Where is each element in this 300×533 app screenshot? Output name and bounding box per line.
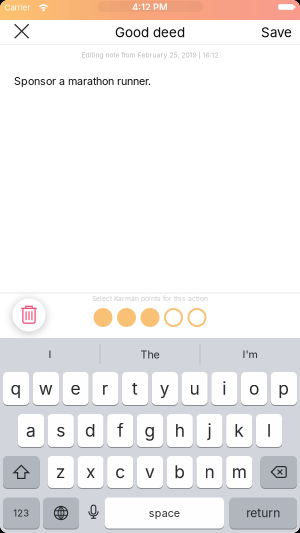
button[interactable]: a — [18, 413, 44, 447]
button[interactable] — [260, 455, 297, 488]
button[interactable]: b — [167, 455, 193, 488]
staticText: n — [204, 462, 214, 482]
staticText: l — [267, 420, 271, 441]
button[interactable] — [12, 298, 45, 331]
button[interactable]: m — [226, 455, 252, 488]
button[interactable]: s — [48, 413, 74, 447]
staticText: y — [160, 378, 170, 399]
button[interactable] — [187, 308, 206, 327]
staticText: 4:12 PM — [132, 1, 168, 12]
button[interactable]: space — [104, 497, 224, 529]
button[interactable]: y — [152, 371, 178, 405]
staticText: space — [149, 507, 180, 519]
button[interactable]: e — [62, 371, 89, 405]
button[interactable]: h — [167, 413, 193, 447]
button[interactable]: r — [92, 371, 118, 405]
staticText: t — [132, 378, 138, 399]
staticText: p — [278, 378, 289, 399]
button[interactable]: v — [137, 455, 163, 488]
button[interactable]: p — [271, 371, 297, 405]
staticText: s — [56, 420, 65, 441]
button[interactable]: f — [107, 413, 133, 447]
button[interactable] — [140, 308, 159, 327]
button[interactable]: x — [77, 455, 104, 488]
button[interactable]: k — [226, 413, 252, 447]
staticText: x — [86, 462, 95, 482]
button[interactable] — [43, 497, 79, 529]
button[interactable] — [3, 455, 39, 488]
button[interactable]: u — [181, 371, 208, 405]
staticText: a — [26, 420, 36, 441]
staticText: Save — [261, 25, 292, 40]
button[interactable] — [164, 308, 183, 327]
staticText: Sponsor a marathon runner. — [14, 75, 151, 87]
button[interactable]: c — [107, 455, 133, 488]
staticText: b — [174, 462, 185, 482]
button[interactable] — [117, 308, 136, 327]
staticText: d — [85, 420, 96, 441]
button[interactable]: l — [256, 413, 282, 447]
staticText: The — [140, 348, 159, 361]
staticText: r — [102, 378, 109, 399]
staticText: m — [232, 462, 247, 482]
staticText: 123 — [13, 507, 29, 518]
button[interactable]: i — [211, 371, 237, 405]
button[interactable] — [8, 17, 36, 45]
staticText: o — [249, 378, 259, 399]
button[interactable]: w — [33, 371, 59, 405]
staticText: k — [234, 420, 244, 441]
button[interactable]: g — [137, 413, 163, 447]
staticText: return — [246, 506, 280, 520]
button[interactable]: The — [102, 341, 198, 367]
button[interactable]: d — [77, 413, 104, 447]
button[interactable] — [83, 501, 103, 525]
button[interactable]: Save — [261, 25, 292, 40]
button[interactable]: 123 — [3, 497, 39, 529]
staticText: w — [39, 378, 53, 399]
staticText: v — [145, 462, 155, 482]
button[interactable]: I — [2, 341, 98, 367]
staticText: z — [56, 462, 66, 482]
staticText: u — [190, 378, 200, 399]
button[interactable]: o — [241, 371, 267, 405]
staticText: Good deed — [115, 25, 185, 40]
staticText: h — [175, 420, 185, 441]
staticText: Select Karman points for this action — [92, 295, 208, 302]
button[interactable]: z — [48, 455, 74, 488]
button[interactable]: return — [229, 497, 297, 529]
staticText: e — [71, 378, 81, 399]
button[interactable]: n — [196, 455, 223, 488]
button[interactable]: I'm — [202, 341, 298, 367]
staticText: I'm — [242, 348, 257, 361]
button[interactable]: j — [196, 413, 223, 447]
button[interactable]: t — [122, 371, 148, 405]
staticText: Editing note from February 25, 2019 | 16… — [81, 51, 218, 59]
staticText: q — [11, 378, 22, 399]
staticText: Carrier — [4, 3, 30, 12]
staticText: g — [144, 420, 155, 441]
staticText: i — [222, 378, 226, 399]
staticText: f — [117, 420, 123, 441]
staticText: j — [207, 420, 211, 441]
staticText: c — [115, 462, 125, 482]
button[interactable] — [93, 308, 112, 327]
staticText: I — [48, 348, 51, 361]
button[interactable]: q — [3, 371, 29, 405]
